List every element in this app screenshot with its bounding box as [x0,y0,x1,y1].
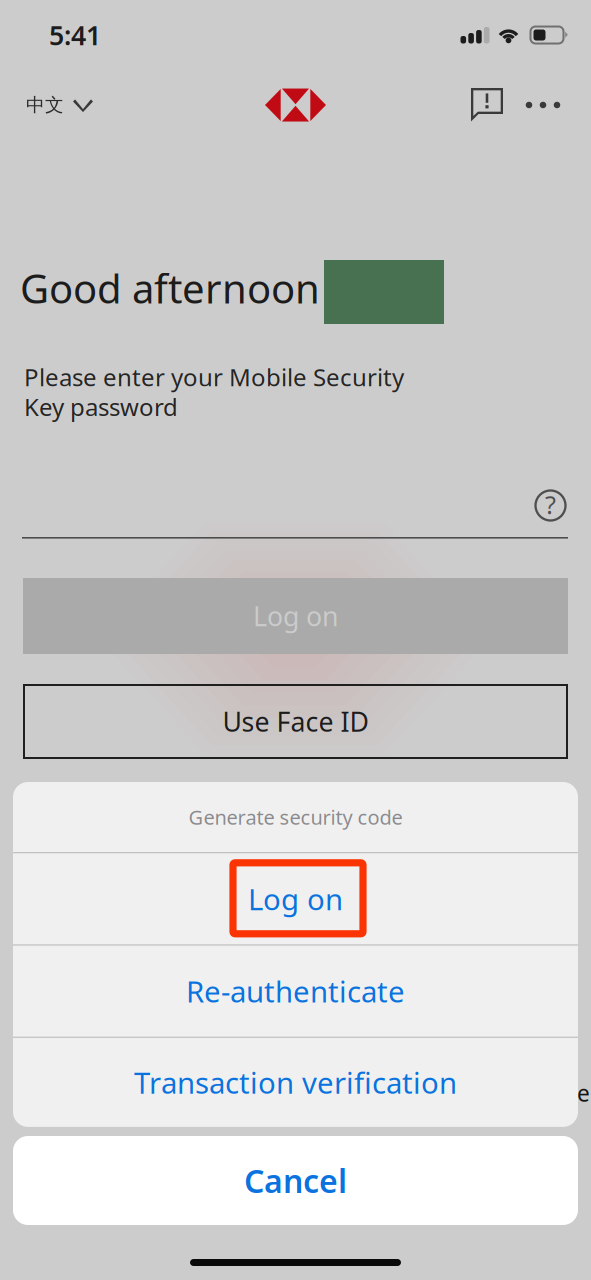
staticText: Good afternoon [20,261,320,314]
button[interactable]: Transaction verification [13,1038,578,1127]
button[interactable]: Alerts [467,84,507,126]
button[interactable]: Help [530,485,571,526]
button[interactable]: Use Face ID [24,685,567,758]
staticText: Please enter your Mobile Security Key pa… [24,361,404,423]
staticText: Re-authenticate [186,972,405,1011]
button[interactable]: More [519,94,567,115]
button[interactable]: Log on [13,853,578,944]
button[interactable]: Log on [23,578,568,654]
staticText: Cancel [244,1159,347,1202]
staticText: Log on [253,598,338,634]
staticText: e [577,1078,590,1108]
staticText: 中文 [26,93,64,116]
button[interactable]: 中文 [22,87,97,122]
staticText: Generate security code [188,804,402,830]
staticText: Log on [248,879,343,918]
staticText: 5:41 [49,17,101,53]
staticText: Use Face ID [222,704,368,739]
staticText: ? [545,488,556,521]
staticText: Transaction verification [134,1063,457,1102]
button[interactable]: Cancel [13,1136,578,1225]
button[interactable]: Re-authenticate [13,946,578,1037]
